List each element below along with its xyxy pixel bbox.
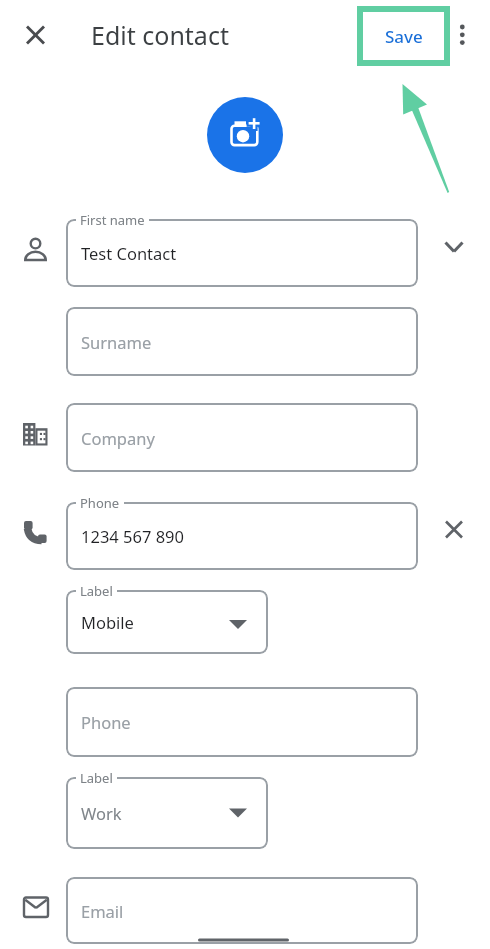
staticText: 1234 567 890 xyxy=(81,525,184,547)
button[interactable] xyxy=(435,227,475,267)
button[interactable] xyxy=(66,877,418,944)
staticText: Save xyxy=(385,25,423,48)
button[interactable] xyxy=(66,590,268,654)
button[interactable] xyxy=(66,777,268,849)
button[interactable] xyxy=(66,403,418,472)
staticText: Email xyxy=(81,900,124,922)
button[interactable] xyxy=(207,97,283,173)
staticText: Phone xyxy=(80,494,120,512)
staticText: First name xyxy=(80,211,145,229)
button[interactable] xyxy=(434,510,474,550)
staticText: Mobile xyxy=(81,611,134,633)
button[interactable] xyxy=(66,687,418,757)
staticText: Company xyxy=(81,427,155,449)
button[interactable]: Save xyxy=(357,6,450,66)
staticText: Test Contact xyxy=(81,242,177,264)
button[interactable] xyxy=(15,15,55,55)
staticText: Work xyxy=(81,802,122,824)
button[interactable] xyxy=(66,307,418,376)
button[interactable] xyxy=(66,219,418,287)
staticText: Surname xyxy=(81,331,152,353)
staticText: Edit contact xyxy=(91,18,229,52)
staticText: Label xyxy=(80,769,113,787)
button[interactable] xyxy=(448,15,478,55)
staticText: Phone xyxy=(81,711,131,733)
button[interactable] xyxy=(66,502,418,570)
staticText: Label xyxy=(80,582,113,600)
